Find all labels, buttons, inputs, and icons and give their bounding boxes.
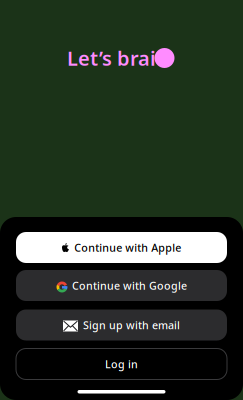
button[interactable]: Log in xyxy=(16,348,227,379)
button[interactable]: Continue with Google xyxy=(16,270,227,301)
button[interactable]: Sign up with email xyxy=(16,309,227,340)
staticText: Continue with Google xyxy=(72,278,187,293)
staticText: Sign up with email xyxy=(83,318,180,332)
staticText: Continue with Apple xyxy=(74,240,181,255)
button[interactable]: Continue with Apple xyxy=(16,232,227,263)
staticText: Log in xyxy=(105,357,138,371)
staticText: Let’s brai xyxy=(67,45,156,71)
